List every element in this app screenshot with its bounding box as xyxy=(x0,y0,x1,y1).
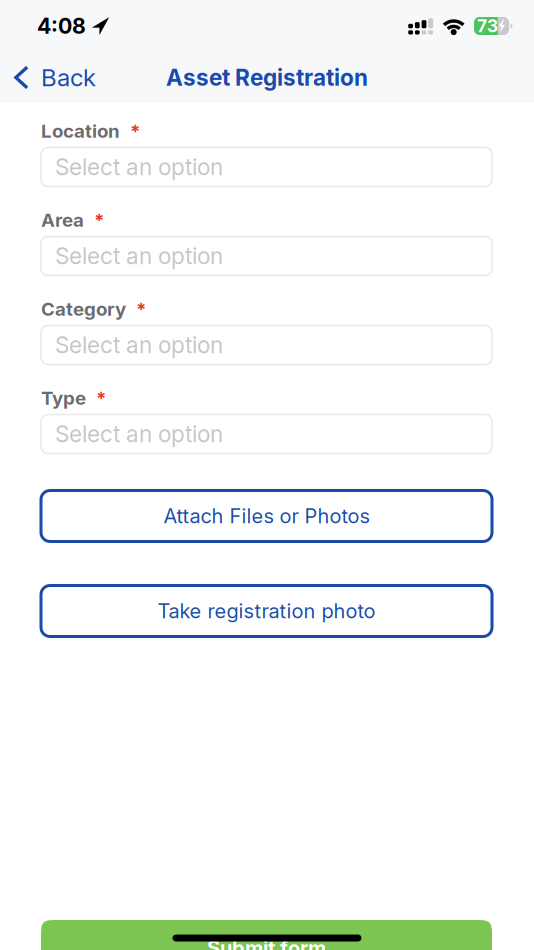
button[interactable]: Select an option xyxy=(41,325,492,364)
staticText: Submit form xyxy=(207,936,326,950)
staticText: Attach Files or Photos xyxy=(163,504,369,528)
button[interactable]: Select an option xyxy=(41,236,492,275)
staticText: Select an option xyxy=(55,153,223,181)
staticText: Select an option xyxy=(55,331,223,359)
staticText: 73 xyxy=(477,15,498,36)
staticText: Take registration photo xyxy=(157,599,375,623)
button[interactable]: Take registration photo xyxy=(41,585,492,636)
staticText: * xyxy=(94,209,104,231)
staticText: Select an option xyxy=(55,242,223,270)
staticText: Category xyxy=(41,298,126,320)
staticText: Back xyxy=(41,63,96,92)
staticText: Area xyxy=(41,209,84,231)
button[interactable]: Back xyxy=(0,53,108,102)
staticText: Location xyxy=(41,120,120,142)
staticText: Type xyxy=(41,387,86,409)
button[interactable]: Select an option xyxy=(41,414,492,453)
staticText: * xyxy=(96,387,106,409)
staticText: Asset Registration xyxy=(166,64,368,91)
staticText: * xyxy=(130,120,140,142)
staticText: Select an option xyxy=(55,420,223,448)
staticText: 4:08 xyxy=(37,13,86,39)
button[interactable]: Attach Files or Photos xyxy=(41,490,492,541)
button[interactable]: Select an option xyxy=(41,147,492,186)
staticText: * xyxy=(136,298,146,320)
button[interactable]: Submit form xyxy=(41,920,492,950)
